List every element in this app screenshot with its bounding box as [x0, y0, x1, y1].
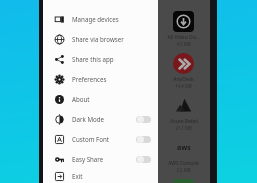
button[interactable]: AnyDesk [157, 53, 210, 89]
staticText: AnyDesk [173, 76, 194, 83]
button[interactable]: Custom Font [43, 129, 158, 149]
staticText: 14.4 MB [175, 83, 192, 89]
staticText: Share this app [72, 55, 151, 63]
button[interactable]: Easy Share [136, 156, 151, 163]
button[interactable]: Dark Mode [136, 116, 151, 123]
button[interactable]: Dark Mode [43, 109, 158, 129]
staticText: 21.1 MB [175, 125, 192, 131]
button[interactable]: Custom Font [136, 136, 151, 143]
staticText: Preferences [72, 75, 151, 83]
staticText: aws [177, 143, 191, 153]
staticText: Share via browser [72, 35, 151, 43]
staticText: Exit [72, 172, 151, 180]
staticText: Manage devices [72, 15, 151, 23]
staticText: Azure Rebel [170, 118, 198, 125]
button[interactable]: All Video Do… [157, 11, 210, 47]
button[interactable]: About [43, 89, 158, 109]
staticText: All Video Do… [167, 34, 200, 41]
staticText: 4.3 MB [176, 41, 191, 47]
staticText: Easy Share [72, 155, 136, 163]
staticText: Custom Font [72, 135, 136, 143]
button[interactable]: Easy Share [43, 149, 158, 169]
button[interactable]: aws [157, 137, 210, 173]
button[interactable]: Preferences [43, 69, 158, 89]
button[interactable]: Azure Rebel [157, 95, 210, 131]
button[interactable]: Share this app [43, 49, 158, 69]
staticText: 2.2 MB [176, 167, 191, 173]
staticText: Dark Mode [72, 115, 136, 123]
button[interactable]: Manage devices [43, 9, 158, 29]
button[interactable]: Adobe Scan [157, 179, 210, 183]
button[interactable]: Exit [43, 169, 158, 183]
button[interactable]: Share via browser [43, 29, 158, 49]
staticText: About [72, 95, 151, 103]
staticText: AWS Console [168, 160, 199, 167]
